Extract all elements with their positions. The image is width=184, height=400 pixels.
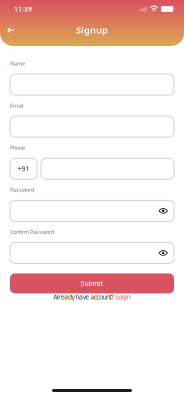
button[interactable]: Login	[116, 292, 131, 301]
button[interactable]: Submit	[10, 273, 174, 293]
staticText: Confirm Password	[10, 228, 54, 235]
staticText: Signup	[76, 24, 108, 36]
staticText: Submit	[80, 279, 103, 288]
staticText: +91	[17, 164, 29, 173]
staticText: Phone	[10, 144, 25, 151]
staticText: Already have account?	[53, 292, 116, 301]
button[interactable]: Back	[2, 21, 20, 39]
staticText: Login	[116, 292, 131, 301]
staticText: Password	[10, 186, 34, 193]
staticText: Name	[10, 60, 25, 67]
staticText: Email	[10, 102, 23, 109]
staticText: 11:39	[14, 5, 32, 13]
